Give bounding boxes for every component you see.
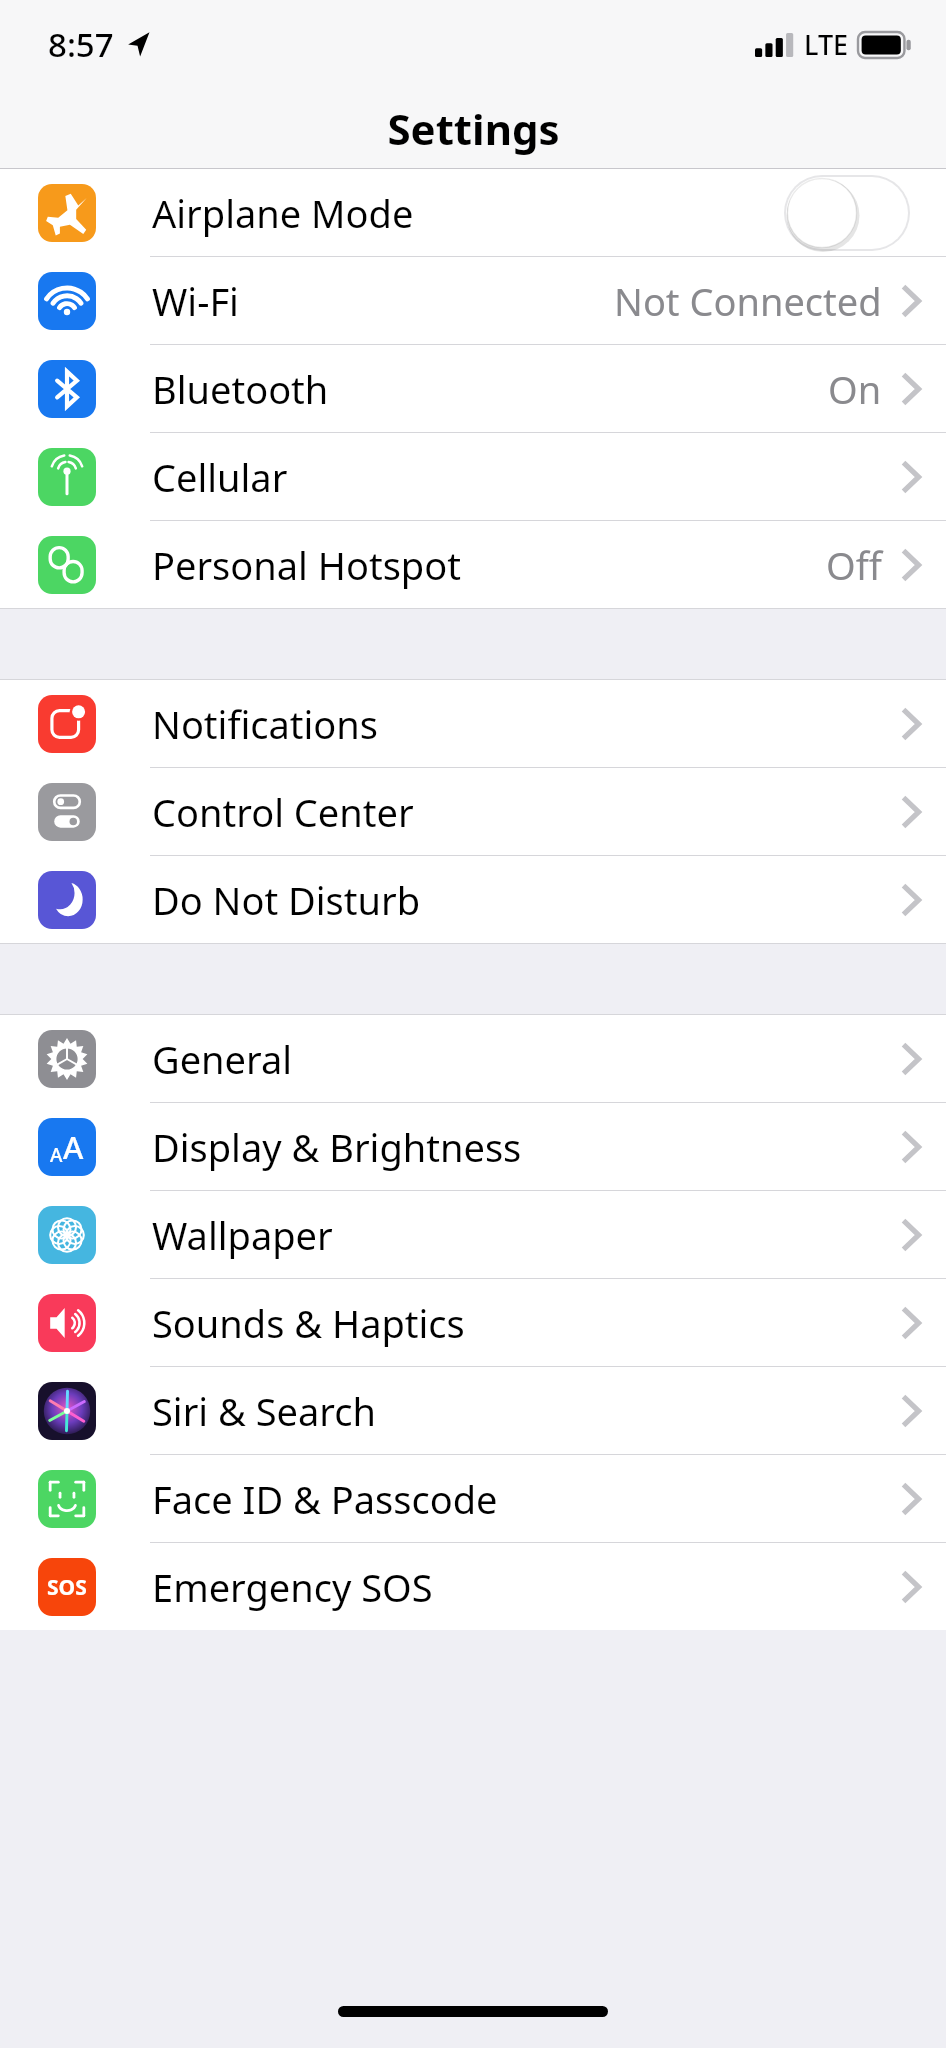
staticText: Wallpaper <box>152 1209 900 1261</box>
staticText: Not Connected <box>614 275 882 327</box>
staticText: 8:57 <box>48 22 114 67</box>
staticText: Control Center <box>152 786 900 838</box>
button[interactable]: Control Center <box>0 768 946 855</box>
button[interactable]: Siri & Search <box>0 1367 946 1454</box>
staticText: A <box>50 1142 63 1168</box>
staticText: Display & Brightness <box>152 1121 900 1173</box>
button[interactable]: SOS <box>0 1543 946 1630</box>
staticText: Face ID & Passcode <box>152 1473 900 1525</box>
button[interactable]: Airplane Mode toggle <box>784 175 910 251</box>
button[interactable]: Do Not Disturb <box>0 856 946 943</box>
button[interactable]: Notifications <box>0 680 946 767</box>
staticText: Emergency SOS <box>152 1561 900 1613</box>
staticText: A <box>63 1126 84 1168</box>
button[interactable]: Bluetooth <box>0 345 946 432</box>
staticText: Personal Hotspot <box>152 539 826 591</box>
button[interactable]: Face ID & Passcode <box>0 1455 946 1542</box>
button[interactable]: Personal Hotspot <box>0 521 946 608</box>
staticText: On <box>828 363 882 415</box>
button[interactable]: Wallpaper <box>0 1191 946 1278</box>
button[interactable]: Airplane Mode <box>0 169 946 256</box>
staticText: Settings <box>387 100 560 157</box>
staticText: LTE <box>804 26 849 63</box>
staticText: Airplane Mode <box>152 187 784 239</box>
staticText: Bluetooth <box>152 363 828 415</box>
button[interactable]: Wi-Fi <box>0 257 946 344</box>
button[interactable]: Sounds & Haptics <box>0 1279 946 1366</box>
staticText: Sounds & Haptics <box>152 1297 900 1349</box>
staticText: Cellular <box>152 451 900 503</box>
staticText: Off <box>826 539 882 591</box>
staticText: General <box>152 1033 900 1085</box>
button[interactable]: A <box>0 1103 946 1190</box>
staticText: Siri & Search <box>152 1385 900 1437</box>
staticText: Wi-Fi <box>152 275 614 327</box>
staticText: SOS <box>47 1573 87 1602</box>
button[interactable]: Cellular <box>0 433 946 520</box>
staticText: Do Not Disturb <box>152 874 900 926</box>
staticText: Notifications <box>152 698 900 750</box>
button[interactable]: General <box>0 1015 946 1102</box>
